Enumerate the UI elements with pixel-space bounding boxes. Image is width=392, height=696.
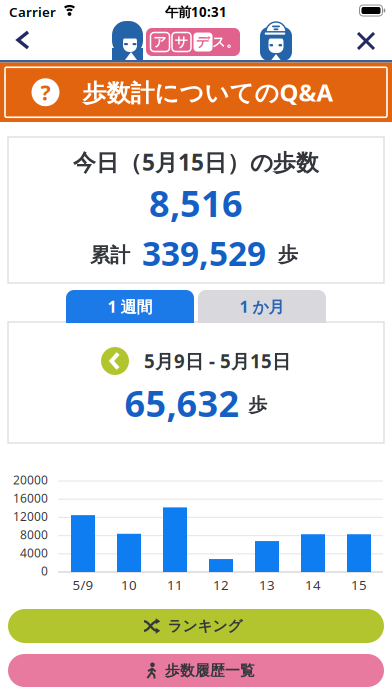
staticText: 10 xyxy=(121,576,137,594)
staticText: 0 xyxy=(41,563,48,579)
staticText: 8,516 xyxy=(149,179,243,227)
button[interactable]: Back xyxy=(14,30,34,50)
staticText: 12 xyxy=(213,576,229,594)
staticText: 11 xyxy=(167,576,183,594)
staticText: ア xyxy=(153,34,167,50)
staticText: ? xyxy=(40,78,50,106)
button[interactable]: 歩数履歴一覧 xyxy=(8,654,384,687)
staticText: デ xyxy=(196,34,210,50)
staticText: 歩 xyxy=(278,242,298,267)
staticText: 8000 xyxy=(20,527,48,542)
staticText: 4000 xyxy=(20,545,48,561)
button[interactable]: ランキング xyxy=(8,609,384,643)
button[interactable]: Close xyxy=(357,32,375,50)
staticText: 歩数計についてのQ&A xyxy=(82,76,333,108)
staticText: ス。 xyxy=(212,34,239,50)
staticText: Carrier xyxy=(9,3,56,21)
staticText: 14 xyxy=(305,576,321,594)
staticText: 5/9 xyxy=(72,576,93,594)
staticText: 20000 xyxy=(13,472,48,488)
staticText: 歩数履歴一覧 xyxy=(165,661,255,679)
staticText: ランキング xyxy=(167,617,242,635)
staticText: 5月9日 - 5月15日 xyxy=(144,349,291,373)
staticText: 16000 xyxy=(13,490,48,506)
staticText: 15 xyxy=(351,576,367,594)
button[interactable]: ? xyxy=(0,62,392,122)
staticText: 1 か月 xyxy=(239,296,284,317)
staticText: 339,529 xyxy=(142,231,266,275)
button[interactable]: 1 週間 xyxy=(66,290,194,323)
button[interactable]: 前の週 xyxy=(101,347,129,375)
button[interactable]: 1 か月 xyxy=(198,290,326,323)
staticText: 1 週間 xyxy=(107,296,152,317)
staticText: 今日（5月15日）の歩数 xyxy=(73,147,319,177)
staticText: サ xyxy=(174,34,188,50)
staticText: 13 xyxy=(259,576,275,594)
staticText: 65,632 xyxy=(124,379,239,427)
staticText: 午前10:31 xyxy=(165,3,227,21)
staticText: 歩 xyxy=(248,393,267,416)
staticText: 累計 xyxy=(90,243,130,267)
staticText: 12000 xyxy=(13,508,48,524)
